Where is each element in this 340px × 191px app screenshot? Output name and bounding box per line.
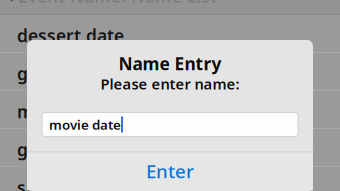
button[interactable]: Add	[320, 0, 331, 1]
staticText: game night	[17, 62, 115, 85]
staticText: movie night	[17, 100, 118, 123]
staticText: golf outing	[17, 138, 111, 161]
button[interactable]: dessert date	[0, 15, 340, 53]
button[interactable]: movie night	[0, 91, 340, 129]
button[interactable]: sushi night	[0, 167, 340, 191]
button[interactable]: game night	[0, 53, 340, 91]
button[interactable]: Back	[6, 0, 14, 2]
staticText: Name Entry	[118, 52, 221, 75]
staticText: dessert date	[17, 24, 124, 47]
staticText: movie date	[49, 116, 121, 133]
staticText: Please enter name:	[100, 74, 239, 93]
button[interactable]: golf outing	[0, 129, 340, 167]
staticText: Event Name: Name List	[18, 0, 217, 7]
button[interactable]: Enter	[27, 152, 313, 190]
staticText: sushi night	[17, 176, 112, 191]
staticText: Enter	[146, 158, 194, 183]
